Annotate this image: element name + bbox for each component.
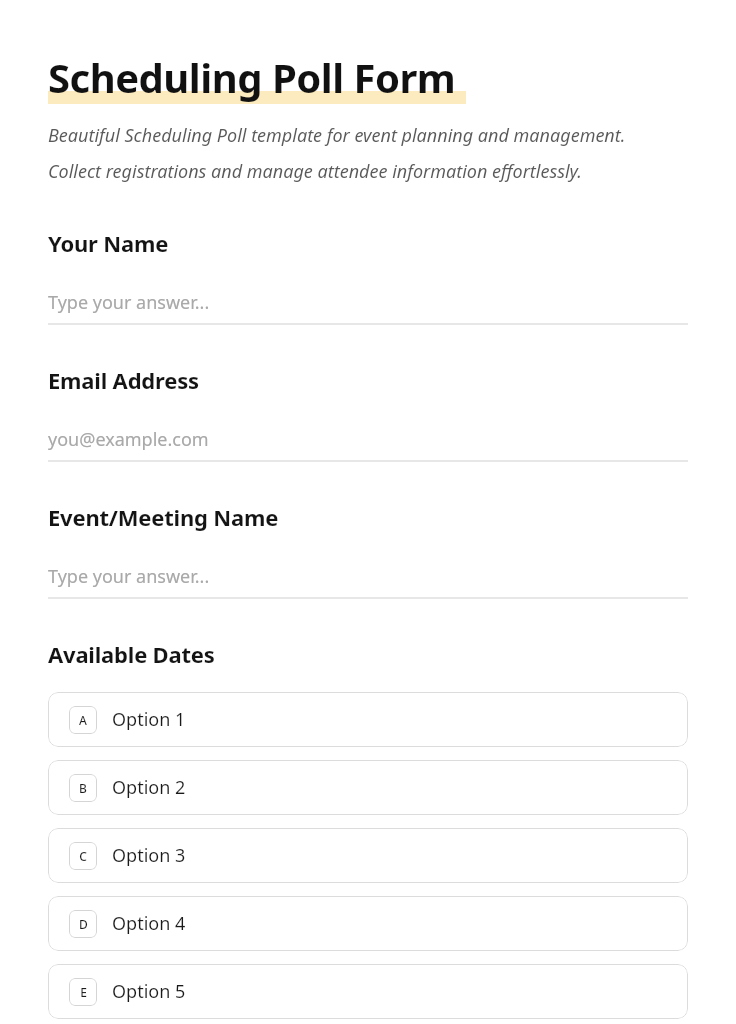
button[interactable]: Type your answer...	[48, 281, 688, 325]
button[interactable]: C	[48, 828, 688, 883]
staticText: Option 1	[112, 707, 186, 732]
button[interactable]: E	[48, 964, 688, 1019]
staticText: you@example.com	[48, 427, 209, 452]
button[interactable]: A	[48, 692, 688, 747]
staticText: Email Address	[48, 365, 199, 395]
staticText: Your Name	[48, 228, 169, 258]
staticText: Option 3	[112, 843, 186, 868]
staticText: Type your answer...	[48, 564, 210, 589]
staticText: C	[79, 848, 87, 864]
button[interactable]: B	[48, 760, 688, 815]
staticText: D	[79, 916, 88, 932]
staticText: A	[79, 712, 87, 728]
staticText: Beautiful Scheduling Poll template for e…	[48, 123, 626, 148]
staticText: Collect registrations and manage attende…	[48, 159, 582, 184]
staticText: Option 5	[112, 979, 186, 1004]
button[interactable]: Type your answer...	[48, 555, 688, 599]
button[interactable]: you@example.com	[48, 418, 688, 462]
staticText: B	[79, 780, 87, 796]
staticText: Option 2	[112, 775, 186, 800]
staticText: Available Dates	[48, 639, 215, 669]
staticText: Event/Meeting Name	[48, 502, 279, 532]
staticText: E	[80, 984, 87, 1000]
staticText: Option 4	[112, 911, 186, 936]
staticText: Scheduling Poll Form	[48, 50, 456, 104]
staticText: Type your answer...	[48, 290, 210, 315]
button[interactable]: D	[48, 896, 688, 951]
